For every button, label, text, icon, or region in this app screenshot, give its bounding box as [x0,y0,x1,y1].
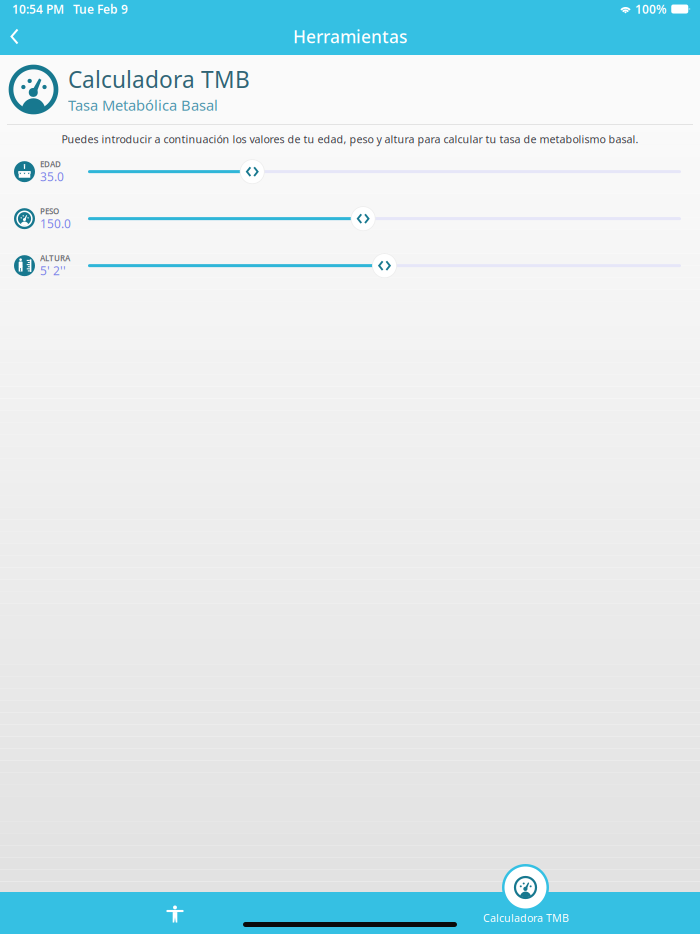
staticText: 35.0 [40,168,64,184]
button[interactable]: Adjust value [240,159,265,184]
staticText: Tasa Metabólica Basal [68,95,218,115]
staticText: EDAD [40,159,61,169]
staticText: 5' 2'' [40,262,66,278]
staticText: ALTURA [40,253,70,263]
staticText: Herramientas [293,25,407,48]
staticText: Calculadora TMB [483,911,569,925]
button[interactable]: Back [0,19,35,53]
staticText: PESO [40,206,59,216]
staticText: 10:54 PM [12,1,64,17]
button[interactable]: Accessibility [125,892,225,934]
staticText: 100% [635,1,667,17]
staticText: 150.0 [40,215,71,231]
button[interactable]: Adjust value [351,206,376,231]
button[interactable]: Adjust value [372,253,397,278]
staticText: Puedes introducir a continuación los val… [61,132,638,146]
staticText: Tue Feb 9 [73,1,128,17]
button[interactable]: Calculadora TMB [451,892,601,934]
staticText: Calculadora TMB [68,64,250,94]
button[interactable]: Calculadora TMB [502,864,549,911]
